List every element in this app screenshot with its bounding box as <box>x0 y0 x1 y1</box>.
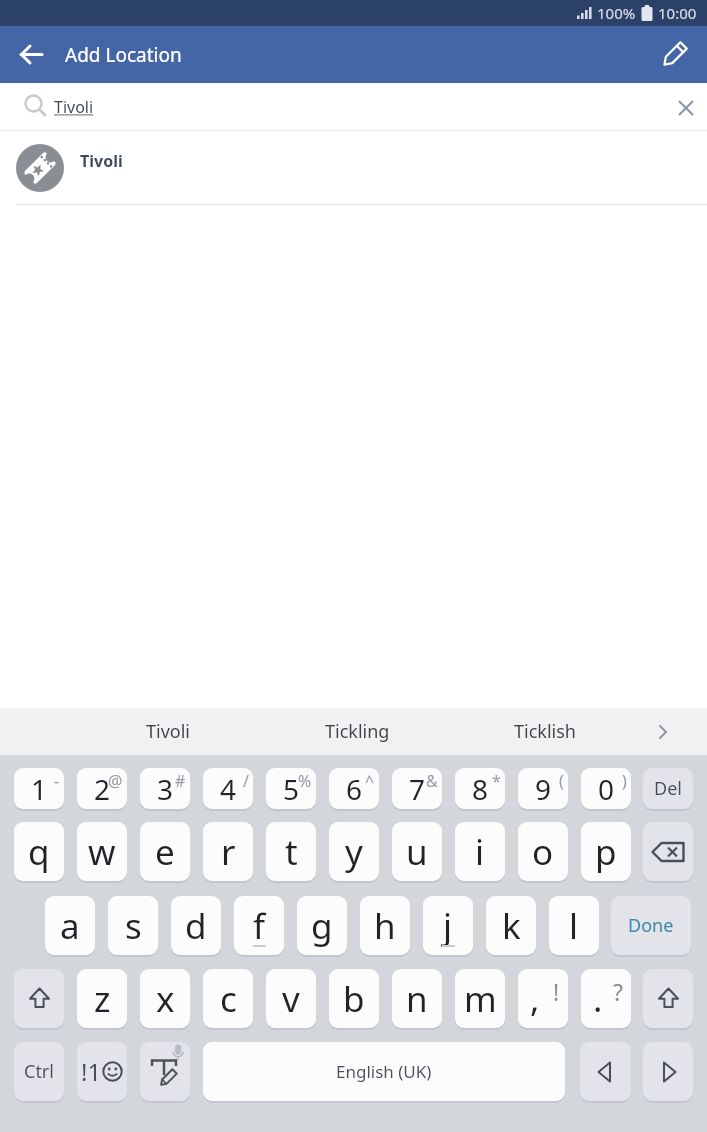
staticText: , <box>530 975 540 1023</box>
staticText: o <box>532 828 554 876</box>
button[interactable]: d <box>171 896 221 955</box>
button[interactable] <box>19 42 44 67</box>
staticText: 5 <box>283 770 300 808</box>
button[interactable]: s <box>108 896 158 955</box>
staticText: k <box>502 902 521 950</box>
staticText: Tivoli <box>54 96 94 118</box>
button[interactable] <box>657 38 691 72</box>
button[interactable]: a <box>45 896 95 955</box>
button[interactable]: Tivoli <box>108 708 228 755</box>
button[interactable]: 1 <box>14 768 64 809</box>
button[interactable] <box>655 724 671 740</box>
button[interactable]: Done <box>611 896 691 955</box>
button[interactable]: q <box>14 822 64 881</box>
button[interactable]: Del <box>643 768 693 809</box>
button[interactable]: !1 <box>77 1042 127 1101</box>
button[interactable]: 8 <box>455 768 505 809</box>
button[interactable]: x <box>140 969 190 1028</box>
button[interactable] <box>580 1042 631 1101</box>
staticText: . <box>593 975 603 1023</box>
staticText: f <box>253 902 266 950</box>
button[interactable] <box>676 98 696 118</box>
button[interactable]: r <box>203 822 253 881</box>
staticText: e <box>155 828 175 876</box>
button[interactable]: 4 <box>203 768 253 809</box>
staticText: @ <box>108 770 123 792</box>
button[interactable]: c <box>203 969 253 1028</box>
button[interactable]: 2 <box>77 768 127 809</box>
button[interactable]: 0 <box>581 768 631 809</box>
staticText: 6 <box>346 770 363 808</box>
staticText: ^ <box>365 770 375 792</box>
staticText: * <box>492 770 501 792</box>
button[interactable]: p <box>581 822 631 881</box>
button[interactable]: z <box>77 969 127 1028</box>
staticText: r <box>221 828 236 876</box>
staticText: Add Location <box>65 42 182 68</box>
staticText: 0 <box>598 770 615 808</box>
button[interactable]: . <box>581 969 631 1028</box>
button[interactable]: k <box>486 896 536 955</box>
staticText: p <box>595 828 617 876</box>
staticText: c <box>220 975 237 1023</box>
button[interactable]: g <box>297 896 347 955</box>
staticText: ) <box>622 770 627 792</box>
button[interactable] <box>643 822 693 881</box>
button[interactable]: o <box>518 822 568 881</box>
button[interactable]: 6 <box>329 768 379 809</box>
staticText: Tickling <box>325 719 390 744</box>
button[interactable]: w <box>77 822 127 881</box>
button[interactable]: y <box>329 822 379 881</box>
staticText: 10:00 <box>658 3 697 23</box>
button[interactable]: , <box>518 969 568 1028</box>
button[interactable]: 5 <box>266 768 316 809</box>
staticText: 3 <box>157 770 174 808</box>
staticText: a <box>60 902 80 950</box>
staticText: u <box>406 828 428 876</box>
staticText: 100% <box>597 3 636 23</box>
staticText: l <box>569 902 579 950</box>
staticText: z <box>94 975 111 1023</box>
button[interactable]: h <box>360 896 410 955</box>
button[interactable] <box>643 969 693 1028</box>
staticText: - <box>54 770 60 792</box>
button[interactable]: n <box>392 969 442 1028</box>
button[interactable]: j <box>423 896 473 955</box>
staticText: Tivoli <box>80 150 123 172</box>
button[interactable]: 9 <box>518 768 568 809</box>
button[interactable]: b <box>329 969 379 1028</box>
button[interactable]: t <box>266 822 316 881</box>
staticText: t <box>285 828 298 876</box>
button[interactable]: 3 <box>140 768 190 809</box>
button[interactable]: f <box>234 896 284 955</box>
button[interactable] <box>643 1042 693 1101</box>
staticText: q <box>28 828 50 876</box>
staticText: v <box>282 975 300 1023</box>
button[interactable] <box>14 969 64 1028</box>
staticText: Done <box>628 913 674 938</box>
staticText: 9 <box>535 770 552 808</box>
button[interactable]: Ticklish <box>485 708 605 755</box>
button[interactable]: m <box>455 969 505 1028</box>
staticText: Ticklish <box>514 719 576 744</box>
button[interactable]: i <box>455 822 505 881</box>
staticText: 2 <box>94 770 111 808</box>
button[interactable]: e <box>140 822 190 881</box>
staticText: ! <box>553 976 560 1007</box>
button[interactable]: Tickling <box>297 708 417 755</box>
staticText: ? <box>613 976 623 1007</box>
button[interactable]: v <box>266 969 316 1028</box>
staticText: x <box>156 975 175 1023</box>
staticText: !1 <box>81 1055 102 1088</box>
button[interactable]: u <box>392 822 442 881</box>
staticText: # <box>175 770 186 792</box>
button[interactable]: Tivoli <box>0 131 707 205</box>
staticText: w <box>88 828 116 876</box>
button[interactable]: l <box>549 896 599 955</box>
button[interactable]: English (UK) <box>203 1042 565 1101</box>
button[interactable] <box>140 1042 190 1101</box>
button[interactable]: 7 <box>392 768 442 809</box>
button[interactable]: Ctrl <box>14 1042 64 1101</box>
staticText: Ctrl <box>24 1059 54 1084</box>
staticText: g <box>311 902 333 950</box>
